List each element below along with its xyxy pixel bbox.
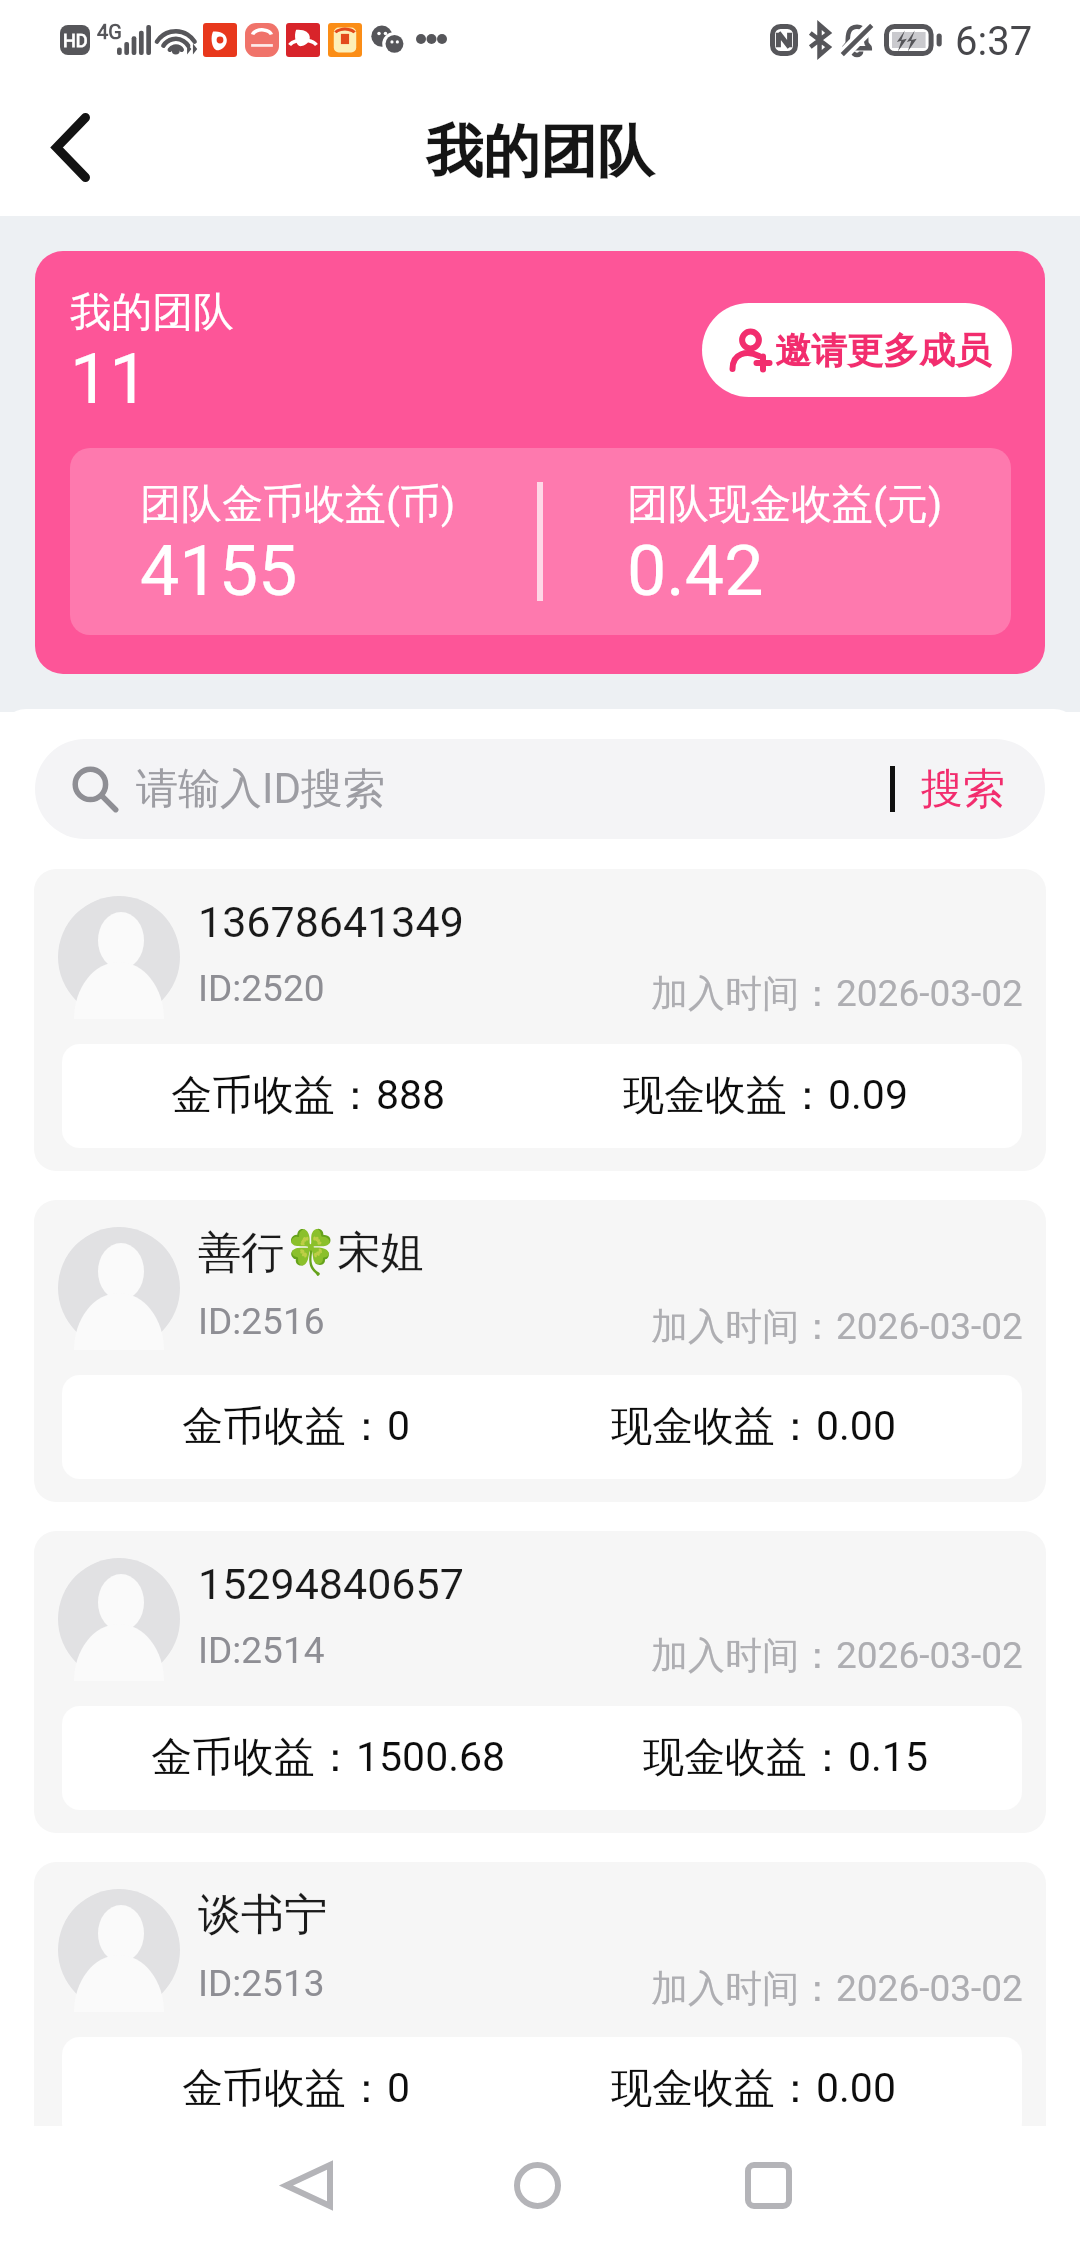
staticText: 邀请更多成员 [775,328,991,373]
staticText: 4155 [140,530,298,612]
button[interactable]: 15294840657 [34,1531,1046,1833]
staticText: 金币收益：888 [171,1070,446,1122]
button[interactable]: 搜索 [895,743,1045,836]
button[interactable]: 13678641349 [34,869,1046,1171]
button[interactable]: Home [482,2155,592,2215]
staticText: ID:2514 [198,1629,325,1672]
staticText: 4G [97,20,122,43]
staticText: 现金收益：0.09 [623,1070,908,1122]
staticText: ID:2513 [198,1962,325,2005]
button[interactable]: 谈书宁 [34,1862,1046,2164]
staticText: 加入时间：2026-03-02 [651,970,1023,1017]
staticText: 现金收益：0.00 [611,1401,896,1453]
button[interactable]: Recents [713,2155,823,2215]
staticText: 现金收益：0.00 [611,2063,896,2115]
staticText: 加入时间：2026-03-02 [651,1632,1023,1679]
staticText: 请输入ID搜索 [136,763,385,816]
staticText: 善行🍀宋姐 [198,1226,424,1280]
button[interactable]: 善行🍀宋姐 [34,1200,1046,1502]
staticText: 金币收益：0 [182,2063,411,2115]
staticText: 11 [70,338,149,420]
staticText: ID:2520 [198,967,325,1010]
staticText: 谈书宁 [198,1888,327,1942]
button[interactable]: Back [253,2155,363,2215]
staticText: 加入时间：2026-03-02 [651,1965,1023,2012]
staticText: ID:2516 [198,1300,325,1343]
button[interactable]: 邀请更多成员 [702,303,1012,397]
staticText: 金币收益：0 [182,1401,411,1453]
staticText: 团队现金收益(元) [627,479,943,531]
staticText: 我的团队 [70,287,234,339]
staticText: 加入时间：2026-03-02 [651,1303,1023,1350]
button[interactable]: Back [25,104,117,196]
staticText: 0.42 [627,530,764,612]
staticText: 我的团队 [426,116,654,188]
staticText: 13678641349 [198,897,464,947]
staticText: 金币收益：1500.68 [151,1732,506,1784]
staticText: 6:37 [955,18,1033,65]
staticText: 15294840657 [198,1559,464,1609]
staticText: HD [63,30,88,51]
staticText: 团队金币收益(币) [140,479,456,531]
staticText: 现金收益：0.15 [643,1732,928,1784]
staticText: 搜索 [921,763,1005,816]
